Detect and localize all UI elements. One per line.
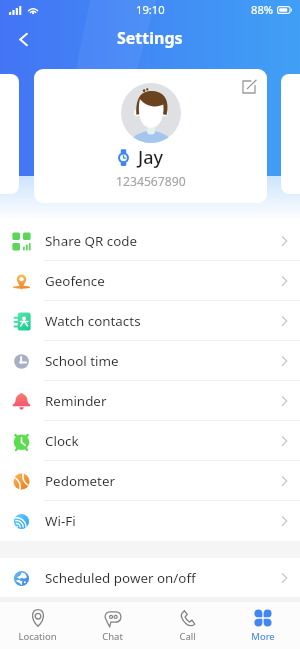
staticText: Chat [102,630,123,643]
staticText: Scheduled power on/off [45,569,196,587]
button[interactable]: Scheduled power on/off [0,558,300,598]
staticText: Reminder [45,392,107,410]
button[interactable]: Pedometer [0,461,300,501]
staticText: Settings [117,27,183,49]
button[interactable]: Edit profile [235,73,263,101]
button[interactable]: Geofence [0,261,300,301]
staticText: Clock [45,432,79,450]
button[interactable]: Reminder [0,381,300,421]
button[interactable]: Watch contacts [0,301,300,341]
staticText: Share QR code [45,232,138,250]
button[interactable]: Wi-Fi [0,501,300,541]
staticText: Location [18,630,57,643]
staticText: Geofence [45,272,105,290]
button[interactable]: Jay [34,69,267,203]
staticText: 19:10 [136,2,165,17]
button[interactable]: Back [6,22,40,56]
button[interactable]: Clock [0,421,300,461]
staticText: School time [45,352,119,370]
staticText: More [251,630,275,643]
staticText: Jay [138,145,164,170]
button[interactable]: School time [0,341,300,381]
staticText: 1234567890 [116,173,186,190]
staticText: 88% [251,2,274,17]
staticText: Pedometer [45,472,115,490]
button[interactable]: Call [150,602,225,649]
staticText: Call [179,630,196,643]
staticText: Wi-Fi [45,512,76,530]
staticText: Watch contacts [45,312,141,330]
button[interactable]: More [225,602,300,649]
button[interactable]: Chat [75,602,150,649]
button[interactable]: Share QR code [0,221,300,261]
button[interactable]: Location [0,602,75,649]
